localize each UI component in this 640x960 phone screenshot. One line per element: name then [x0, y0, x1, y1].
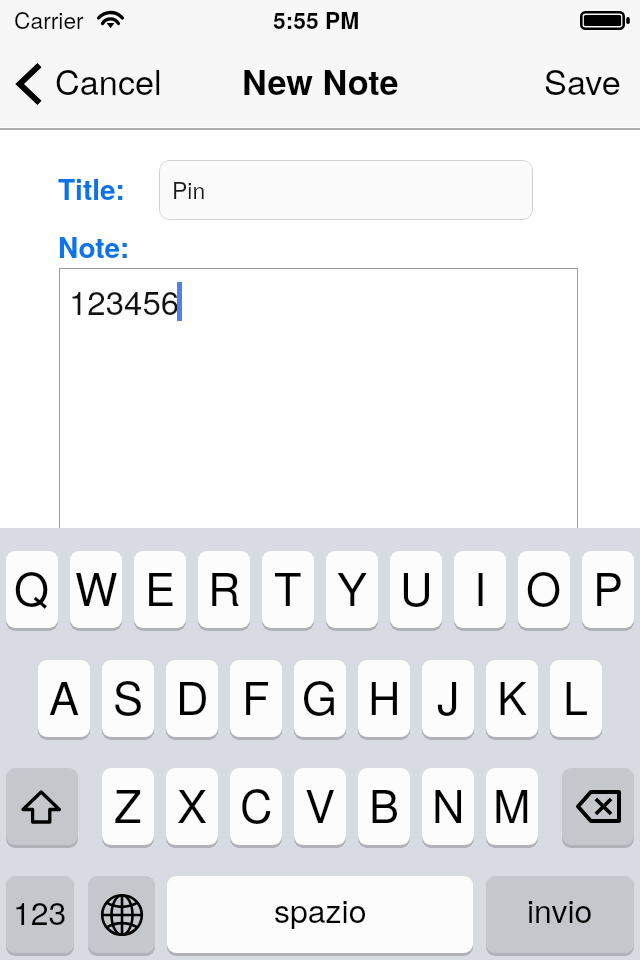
button[interactable]: O [518, 551, 570, 628]
button[interactable]: A [38, 660, 90, 737]
button[interactable]: D [166, 660, 218, 737]
button[interactable]: P [582, 551, 634, 628]
staticText: I [474, 554, 487, 618]
staticText: E [145, 554, 176, 618]
staticText: J [437, 663, 460, 727]
button[interactable]: Y [326, 551, 378, 628]
staticText: 5:55 PM [273, 3, 360, 36]
staticText: invio [527, 886, 593, 932]
button[interactable]: C [230, 768, 282, 845]
button[interactable]: F [230, 660, 282, 737]
staticText: G [302, 663, 338, 727]
button[interactable]: Save [544, 37, 621, 124]
button[interactable]: Backspace [562, 768, 634, 845]
staticText: R [208, 554, 241, 618]
staticText: T [274, 554, 302, 618]
staticText: 123 [13, 888, 67, 934]
staticText: Carrier [14, 3, 84, 36]
button[interactable]: M [486, 768, 538, 845]
button[interactable]: B [358, 768, 410, 845]
staticText: C [240, 771, 273, 835]
staticText: Pin [172, 173, 206, 206]
button[interactable]: V [294, 768, 346, 845]
button[interactable]: Z [102, 768, 154, 845]
staticText: L [563, 663, 589, 727]
button[interactable]: R [198, 551, 250, 628]
button[interactable]: Cancel [15, 37, 162, 124]
button[interactable]: U [390, 551, 442, 628]
button[interactable]: H [358, 660, 410, 737]
button[interactable]: invio [486, 876, 634, 953]
button[interactable]: W [70, 551, 122, 628]
button[interactable]: 123456 [59, 268, 578, 533]
button[interactable]: K [486, 660, 538, 737]
staticText: 123456 [69, 277, 180, 324]
staticText: N [432, 771, 465, 835]
button[interactable]: E [134, 551, 186, 628]
staticText: F [242, 663, 270, 727]
staticText: X [177, 771, 208, 835]
staticText: K [497, 663, 528, 727]
button[interactable]: G [294, 660, 346, 737]
staticText: Z [114, 771, 142, 835]
staticText: Q [14, 554, 50, 618]
staticText: S [113, 663, 144, 727]
button[interactable]: I [454, 551, 506, 628]
staticText: Cancel [55, 56, 162, 105]
staticText: P [593, 554, 624, 618]
button[interactable]: T [262, 551, 314, 628]
staticText: V [305, 771, 336, 835]
staticText: H [368, 663, 401, 727]
staticText: D [176, 663, 209, 727]
staticText: A [49, 663, 80, 727]
staticText: Y [337, 554, 368, 618]
staticText: New Note [242, 56, 399, 105]
staticText: M [493, 771, 531, 835]
staticText: Note: [58, 226, 130, 266]
staticText: O [526, 554, 562, 618]
staticText: B [369, 771, 400, 835]
staticText: Save [544, 56, 621, 105]
button[interactable]: S [102, 660, 154, 737]
button[interactable]: Pin [159, 160, 533, 220]
staticText: U [400, 554, 433, 618]
button[interactable]: X [166, 768, 218, 845]
button[interactable]: Q [6, 551, 58, 628]
staticText: W [75, 554, 118, 618]
staticText: Title: [58, 168, 125, 208]
button[interactable]: L [550, 660, 602, 737]
button[interactable]: 123 [6, 876, 74, 953]
button[interactable]: spazio [167, 876, 473, 953]
button[interactable]: Change keyboard language [88, 876, 155, 953]
staticText: spazio [274, 886, 367, 932]
button[interactable]: J [422, 660, 474, 737]
button[interactable]: Shift [6, 768, 78, 845]
button[interactable]: N [422, 768, 474, 845]
